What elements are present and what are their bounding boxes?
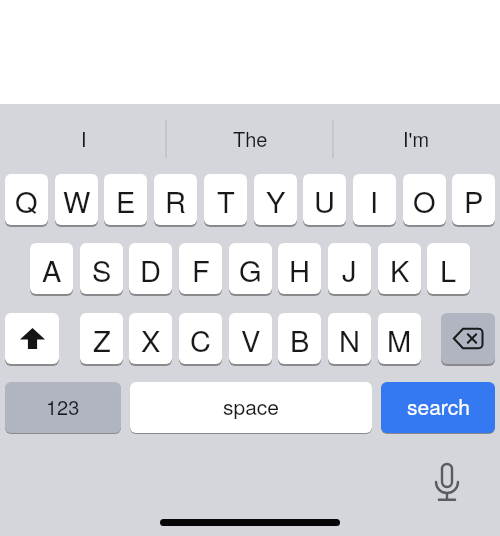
button[interactable]: The xyxy=(167,104,334,172)
button[interactable]: U xyxy=(303,174,346,225)
staticText: X xyxy=(141,319,161,361)
button[interactable]: O xyxy=(403,174,446,225)
staticText: L xyxy=(440,249,457,291)
staticText: H xyxy=(289,249,310,291)
button[interactable]: Q xyxy=(5,174,48,225)
button[interactable] xyxy=(428,460,466,506)
staticText: Q xyxy=(15,180,38,222)
staticText: S xyxy=(92,249,112,291)
button[interactable]: B xyxy=(278,313,321,364)
staticText: A xyxy=(42,249,62,291)
staticText: J xyxy=(342,249,357,291)
staticText: space xyxy=(223,391,280,421)
staticText: I'm xyxy=(403,124,430,153)
staticText: The xyxy=(233,124,268,153)
button[interactable]: T xyxy=(204,174,247,225)
button[interactable]: N xyxy=(328,313,371,364)
staticText: R xyxy=(165,180,186,222)
staticText: U xyxy=(314,180,335,222)
staticText: D xyxy=(140,249,161,291)
staticText: Z xyxy=(93,319,111,361)
button[interactable]: M xyxy=(378,313,421,364)
button[interactable]: X xyxy=(129,313,172,364)
staticText: M xyxy=(387,319,412,361)
button[interactable]: R xyxy=(154,174,197,225)
button[interactable]: P xyxy=(452,174,495,225)
staticText: P xyxy=(464,180,484,222)
staticText: search xyxy=(407,391,470,421)
staticText: E xyxy=(116,180,136,222)
staticText: Y xyxy=(266,180,286,222)
button[interactable]: space xyxy=(130,382,372,433)
button[interactable]: S xyxy=(80,243,123,294)
button[interactable]: D xyxy=(129,243,172,294)
staticText: K xyxy=(390,249,410,291)
button[interactable]: Y xyxy=(254,174,297,225)
staticText: O xyxy=(413,180,436,222)
button[interactable] xyxy=(441,313,495,364)
staticText: 123 xyxy=(46,392,80,421)
button[interactable]: E xyxy=(104,174,147,225)
staticText: F xyxy=(192,249,210,291)
button[interactable]: A xyxy=(30,243,73,294)
button[interactable]: W xyxy=(55,174,98,225)
button[interactable]: F xyxy=(179,243,222,294)
button[interactable]: 123 xyxy=(5,382,121,433)
button[interactable] xyxy=(5,313,59,364)
button[interactable]: K xyxy=(378,243,421,294)
button[interactable]: L xyxy=(427,243,470,294)
staticText: N xyxy=(339,319,360,361)
staticText: V xyxy=(241,319,261,361)
button[interactable]: search xyxy=(381,382,495,433)
staticText: I xyxy=(81,124,87,153)
button[interactable]: I xyxy=(0,104,167,172)
staticText: I xyxy=(370,180,379,222)
button[interactable]: G xyxy=(229,243,272,294)
staticText: W xyxy=(63,180,91,222)
button[interactable]: I'm xyxy=(333,104,500,172)
staticText: C xyxy=(190,319,211,361)
staticText: B xyxy=(290,319,310,361)
button[interactable]: V xyxy=(229,313,272,364)
button[interactable]: I xyxy=(353,174,396,225)
staticText: T xyxy=(217,180,235,222)
button[interactable]: Z xyxy=(80,313,123,364)
staticText: G xyxy=(239,249,262,291)
button[interactable]: H xyxy=(278,243,321,294)
button[interactable]: J xyxy=(328,243,371,294)
button[interactable]: C xyxy=(179,313,222,364)
